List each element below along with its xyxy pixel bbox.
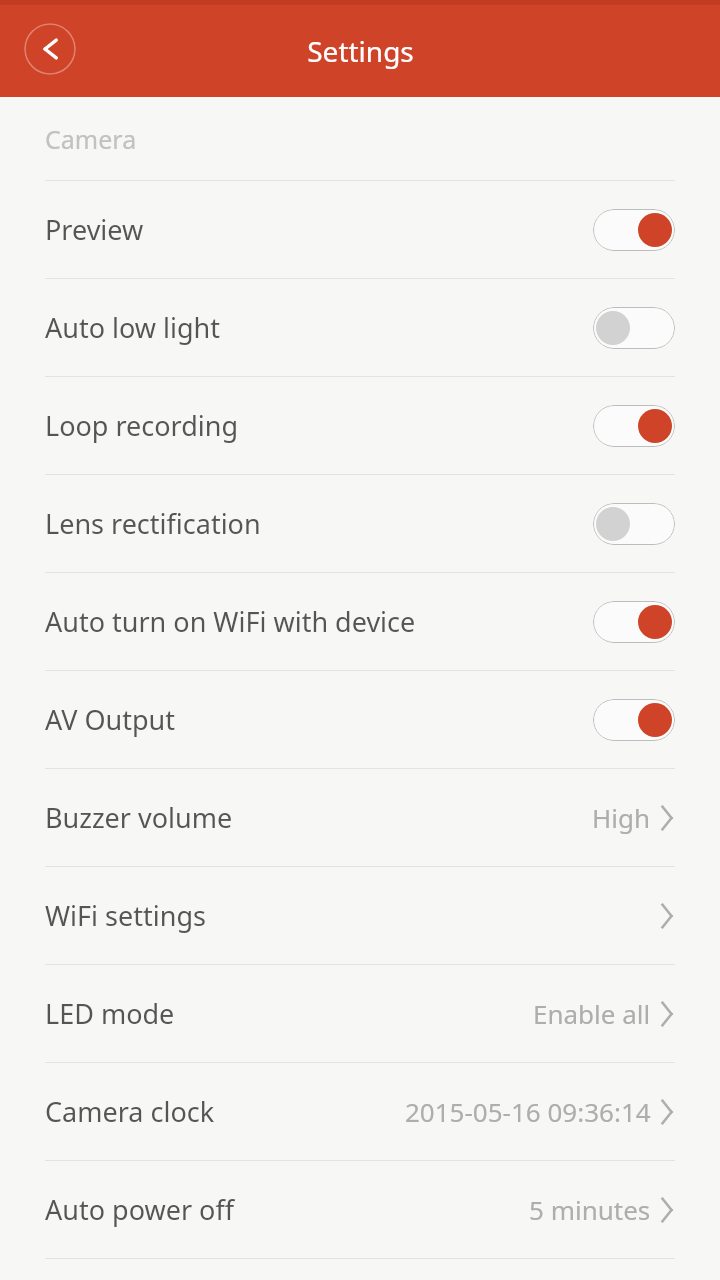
staticText: Camera clock — [45, 1093, 405, 1130]
button[interactable]: Loop recording — [0, 377, 720, 474]
staticText: Settings — [307, 32, 414, 70]
staticText: Enable all — [533, 996, 651, 1031]
staticText: High — [592, 800, 651, 835]
button[interactable]: LED mode — [0, 965, 720, 1062]
button[interactable]: WiFi settings — [0, 867, 720, 964]
button[interactable]: Preview — [0, 181, 720, 278]
button[interactable]: Back — [24, 23, 76, 75]
staticText: Auto low light — [45, 309, 593, 346]
staticText: Camera — [45, 122, 137, 156]
staticText: WiFi settings — [45, 897, 659, 934]
staticText: Auto turn on WiFi with device — [45, 603, 593, 640]
staticText: Preview — [45, 211, 593, 248]
button[interactable]: AV Output — [0, 671, 720, 768]
staticText: Auto power off — [45, 1191, 529, 1228]
button[interactable]: Auto power off — [0, 1161, 720, 1258]
staticText: Lens rectification — [45, 505, 593, 542]
button[interactable]: Buzzer volume — [0, 769, 720, 866]
button[interactable]: Lens rectification — [0, 475, 720, 572]
staticText: 2015-05-16 09:36:14 — [405, 1094, 651, 1129]
staticText: 5 minutes — [529, 1192, 651, 1227]
staticText: AV Output — [45, 701, 593, 738]
staticText: Loop recording — [45, 407, 593, 444]
staticText: LED mode — [45, 995, 533, 1032]
button[interactable]: Auto turn on WiFi with device — [0, 573, 720, 670]
button[interactable]: Camera clock — [0, 1063, 720, 1160]
button[interactable]: Auto low light — [0, 279, 720, 376]
staticText: Buzzer volume — [45, 799, 592, 836]
